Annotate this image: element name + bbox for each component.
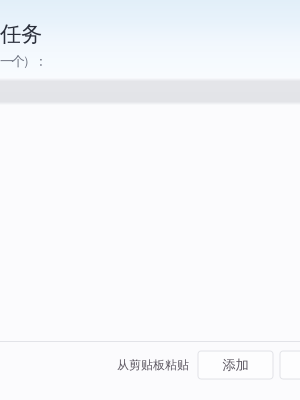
button[interactable]: 从剪贴板粘贴 bbox=[111, 351, 195, 379]
staticText: 从剪贴板粘贴 bbox=[117, 358, 189, 372]
button[interactable]: Cancel bbox=[280, 351, 300, 379]
staticText: 添加 bbox=[222, 357, 248, 373]
staticText: 一个）： bbox=[0, 53, 47, 69]
staticText: 任务 bbox=[0, 21, 42, 47]
button[interactable]: 添加 bbox=[198, 351, 273, 379]
